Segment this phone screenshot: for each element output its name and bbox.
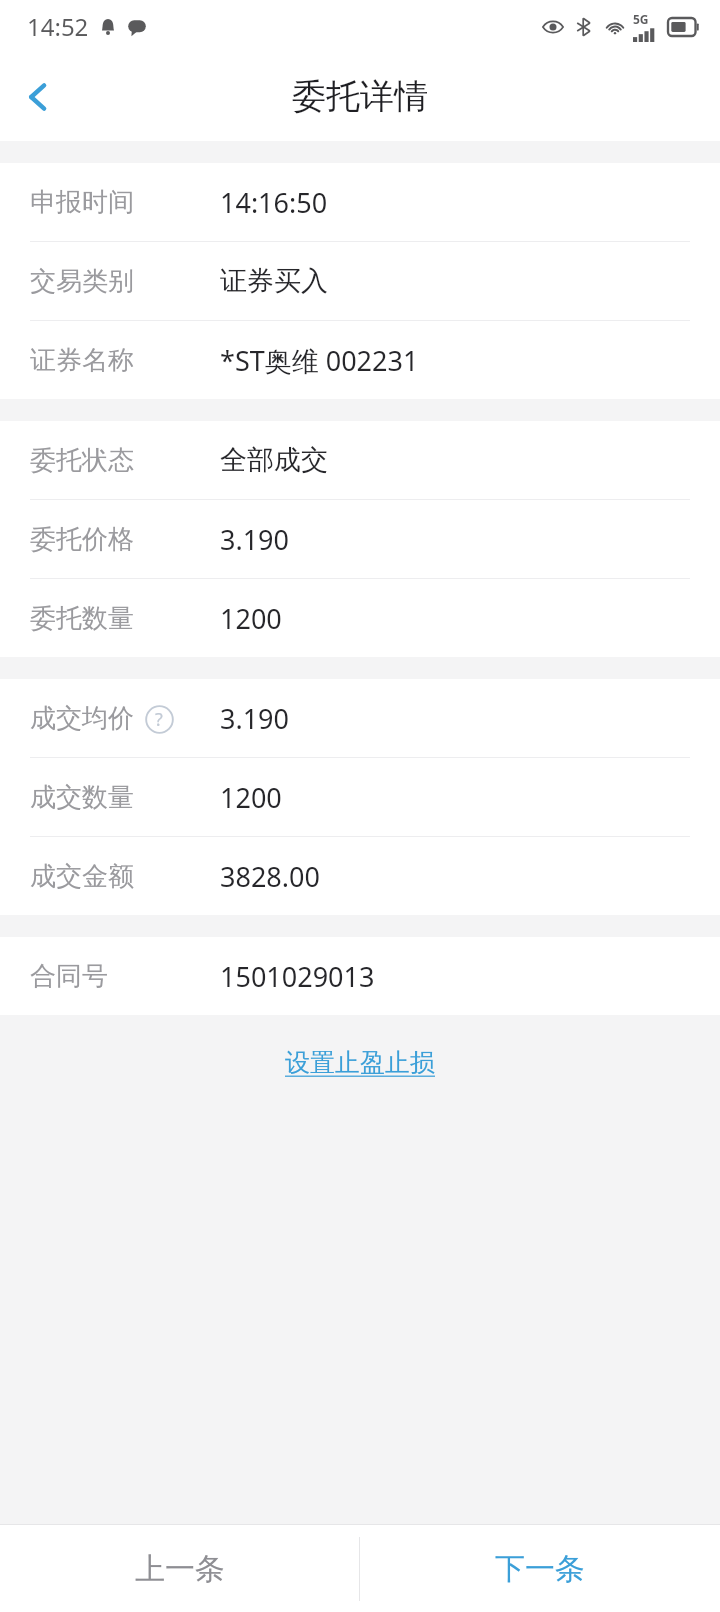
staticText: 下一条 <box>495 1550 585 1588</box>
staticText: 3.190 <box>220 700 290 737</box>
button[interactable]: 交易类别 <box>0 242 720 320</box>
staticText: 全部成交 <box>220 443 328 477</box>
staticText: 3.190 <box>220 521 290 558</box>
button[interactable]: 下一条 <box>360 1525 720 1612</box>
staticText: 合同号 <box>30 960 108 993</box>
button[interactable]: 委托价格 <box>0 500 720 578</box>
staticText: 上一条 <box>135 1550 225 1588</box>
staticText: 委托详情 <box>292 75 428 118</box>
staticText: ? <box>155 707 163 732</box>
button[interactable]: 成交数量 <box>0 758 720 836</box>
staticText: 设置止盈止损 <box>285 1047 435 1078</box>
staticText: 委托数量 <box>30 602 134 635</box>
staticText: 申报时间 <box>30 186 134 219</box>
button[interactable]: 委托状态 <box>0 421 720 499</box>
staticText: 1200 <box>220 600 282 637</box>
staticText: 成交数量 <box>30 781 134 814</box>
button[interactable]: 合同号 <box>0 937 720 1015</box>
button[interactable]: 证券名称 <box>0 321 720 399</box>
staticText: 3828.00 <box>220 858 320 895</box>
button[interactable]: 委托数量 <box>0 579 720 657</box>
button[interactable]: Back <box>0 59 76 135</box>
button[interactable]: 成交均价 <box>0 679 720 757</box>
staticText: 委托状态 <box>30 444 134 477</box>
staticText: 14:52 <box>27 10 89 43</box>
staticText: 成交均价 <box>30 702 134 735</box>
staticText: 证券买入 <box>220 264 328 298</box>
staticText: 14:16:50 <box>220 184 328 221</box>
button[interactable]: 设置止盈止损 <box>261 1035 459 1090</box>
button[interactable]: Help <box>144 704 174 734</box>
staticText: 1200 <box>220 779 282 816</box>
staticText: 委托价格 <box>30 523 134 556</box>
button[interactable]: 上一条 <box>0 1525 359 1612</box>
staticText: 交易类别 <box>30 265 134 298</box>
staticText: 5G <box>633 11 649 27</box>
staticText: 证券名称 <box>30 344 134 377</box>
staticText: 成交金额 <box>30 860 134 893</box>
staticText: *ST奥维 002231 <box>220 342 419 379</box>
staticText: 1501029013 <box>220 958 375 995</box>
button[interactable]: 申报时间 <box>0 163 720 241</box>
button[interactable]: 成交金额 <box>0 837 720 915</box>
